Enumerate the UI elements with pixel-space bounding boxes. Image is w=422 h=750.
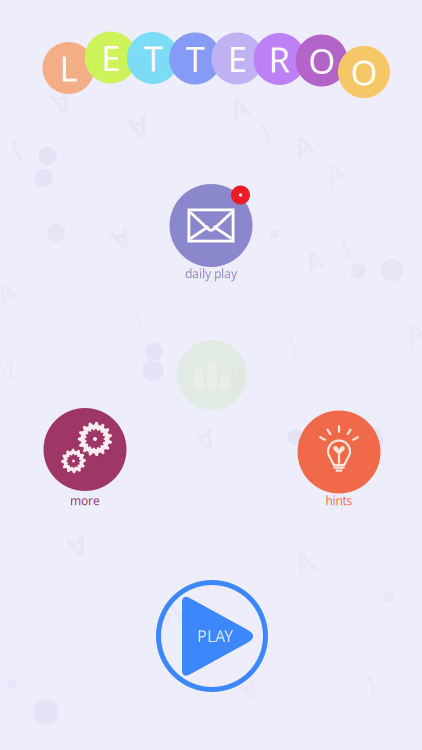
staticText: daily play [185, 265, 237, 281]
staticText: E [101, 34, 120, 80]
staticText: J [14, 140, 22, 170]
staticText: L [59, 45, 77, 91]
button[interactable]: hints [289, 416, 388, 537]
staticText: T [143, 35, 162, 81]
staticText: O [308, 37, 335, 83]
staticText: A [161, 592, 179, 628]
staticText: A [241, 674, 259, 710]
staticText: A [130, 108, 150, 147]
button[interactable]: daily play [161, 189, 260, 309]
button[interactable]: more [35, 412, 134, 538]
staticText: A [293, 127, 312, 165]
staticText: A [230, 90, 248, 126]
button[interactable]: Stats [177, 340, 247, 410]
button[interactable]: PLAY [156, 580, 268, 692]
staticText: A [229, 363, 247, 399]
staticText: A [52, 83, 72, 122]
staticText: T [186, 35, 205, 81]
staticText: A [112, 221, 131, 259]
staticText: PLAY [197, 625, 233, 647]
staticText: E [228, 35, 247, 81]
staticText: O [350, 49, 377, 95]
staticText: hints [325, 492, 352, 508]
staticText: more [70, 492, 100, 508]
staticText: R [268, 36, 290, 82]
